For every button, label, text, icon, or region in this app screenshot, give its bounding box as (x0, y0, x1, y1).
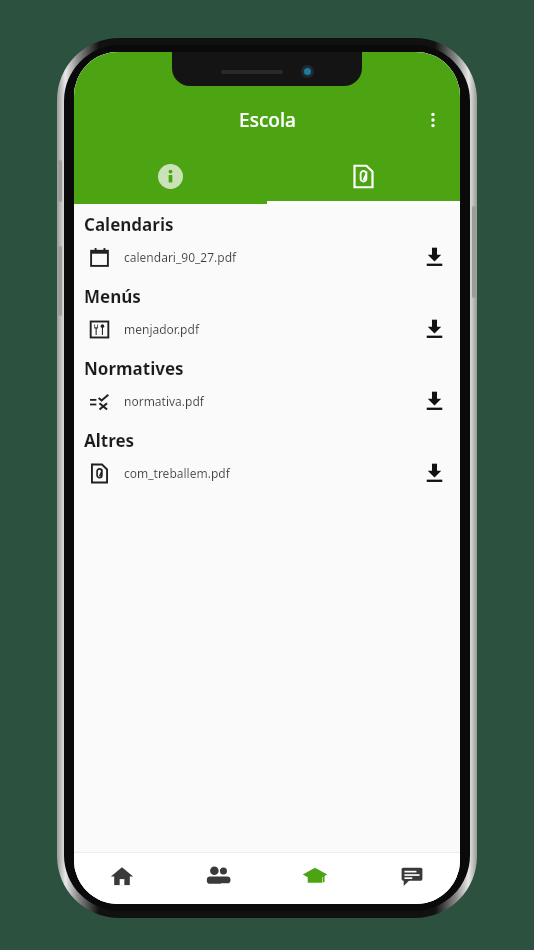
button[interactable]: menjador.pdf (74, 309, 460, 348)
staticText: Calendaris (84, 213, 174, 236)
staticText: calendari_90_27.pdf (124, 249, 237, 265)
staticText: menjador.pdf (124, 321, 200, 337)
staticText: com_treballem.pdf (124, 465, 230, 481)
staticText: Normatives (84, 357, 184, 380)
button[interactable]: People (170, 852, 266, 904)
button[interactable]: Download normativa.pdf (414, 381, 454, 420)
button[interactable]: Download menjador.pdf (414, 309, 454, 348)
button[interactable]: Download calendari_90_27.pdf (414, 237, 454, 276)
button[interactable]: normativa.pdf (74, 381, 460, 420)
staticText: Altres (84, 429, 135, 452)
staticText: normativa.pdf (124, 393, 204, 409)
button[interactable]: calendari_90_27.pdf (74, 237, 460, 276)
button[interactable]: Information (74, 148, 267, 204)
button[interactable]: Home (74, 852, 170, 904)
staticText: Menús (84, 285, 141, 308)
button[interactable]: Messages (363, 852, 460, 904)
button[interactable]: More options (412, 99, 454, 141)
button[interactable]: Documents (267, 148, 460, 204)
button[interactable]: com_treballem.pdf (74, 453, 460, 492)
button[interactable]: School (266, 852, 363, 904)
button[interactable]: Download com_treballem.pdf (414, 453, 454, 492)
staticText: Escola (239, 107, 296, 133)
